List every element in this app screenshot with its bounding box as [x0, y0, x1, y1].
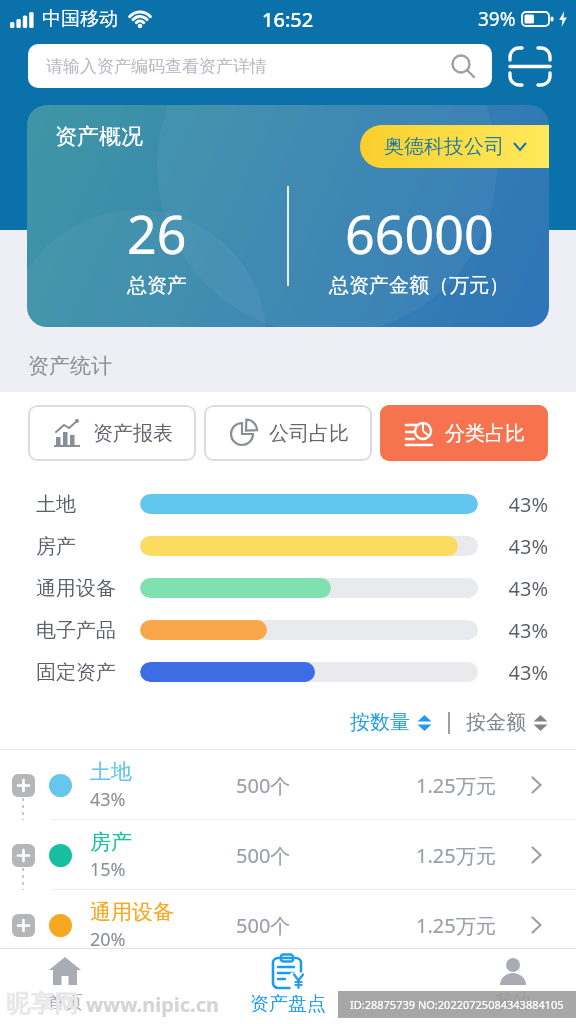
staticText: 16:52 — [262, 6, 314, 33]
button[interactable]: 公司占比 — [204, 405, 372, 461]
staticText: 43% — [478, 617, 548, 644]
staticText: 通用设备 — [90, 899, 174, 925]
staticText: 15% — [90, 857, 126, 882]
staticText: 500个 — [236, 912, 291, 939]
staticText: 我的 — [495, 991, 531, 1014]
staticText: 通用设备 — [36, 576, 140, 601]
staticText: 43% — [478, 491, 548, 518]
staticText: 首页 — [47, 991, 83, 1014]
staticText: 总资产金额（万元） — [329, 273, 509, 298]
staticText: 土地 — [90, 759, 132, 785]
button[interactable]: 按数量 — [350, 710, 432, 735]
button[interactable]: 资产报表 — [28, 405, 196, 461]
staticText: 请输入资产编码查看资产详情 — [46, 56, 267, 77]
staticText: 固定资产 — [36, 660, 140, 685]
staticText: 中国移动 — [42, 7, 118, 31]
staticText: 分类占比 — [445, 421, 525, 446]
staticText: 500个 — [236, 842, 291, 869]
button[interactable]: 房产 — [0, 820, 576, 890]
staticText: 39% — [478, 6, 516, 32]
staticText: 房产 — [36, 534, 140, 559]
staticText: 土地 — [36, 492, 140, 517]
staticText: 66000 — [345, 198, 494, 269]
staticText: 1.25万元 — [416, 842, 496, 869]
staticText: 26 — [127, 198, 187, 269]
button[interactable]: 资产盘点 — [250, 954, 326, 1016]
staticText: 43% — [478, 659, 548, 686]
staticText: 500个 — [236, 772, 291, 799]
staticText: 奥德科技公司 — [384, 134, 504, 159]
button[interactable]: 土地 — [0, 750, 576, 820]
button[interactable] — [492, 44, 568, 88]
staticText: 公司占比 — [269, 421, 349, 446]
staticText: www.nipic.cn — [86, 991, 220, 1018]
staticText: 43% — [478, 575, 548, 602]
staticText: 资产报表 — [93, 421, 173, 446]
staticText: 电子产品 — [36, 618, 140, 643]
button[interactable]: 分类占比 — [380, 405, 548, 461]
staticText: 按数量 — [350, 710, 410, 735]
staticText: ID:28875739 NO:20220725084343884105 — [350, 997, 564, 1012]
staticText: 1.25万元 — [416, 772, 496, 799]
button[interactable]: 我的 — [495, 957, 531, 1014]
staticText: 20% — [90, 927, 126, 952]
button[interactable]: 请输入资产编码查看资产详情 — [28, 44, 492, 88]
staticText: 资产盘点 — [250, 992, 326, 1016]
staticText: 43% — [90, 787, 126, 812]
staticText: 资产统计 — [28, 353, 112, 379]
staticText: 按金额 — [466, 710, 526, 735]
staticText: 昵享网 — [6, 989, 78, 1019]
staticText: 43% — [478, 533, 548, 560]
staticText: 1.25万元 — [416, 912, 496, 939]
staticText: 资产概况 — [55, 123, 143, 151]
button[interactable]: 按金额 — [466, 710, 548, 735]
staticText: 房产 — [90, 829, 132, 855]
staticText: 总资产 — [127, 273, 187, 298]
button[interactable]: 首页 — [47, 957, 83, 1014]
button[interactable]: 通用设备 — [0, 890, 576, 960]
button[interactable]: 奥德科技公司 — [360, 125, 549, 168]
